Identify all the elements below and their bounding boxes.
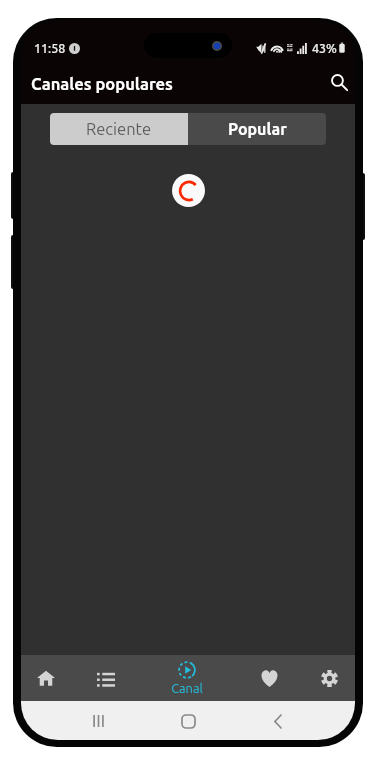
button[interactable]: Channel list xyxy=(80,655,132,701)
staticText: 43% xyxy=(312,41,337,55)
button[interactable]: Reciente xyxy=(50,113,188,145)
staticText: 11:58 xyxy=(34,41,66,55)
button[interactable]: Popular xyxy=(188,113,326,145)
staticText: Reciente xyxy=(86,120,152,138)
staticText: Canal xyxy=(171,681,203,695)
button[interactable]: Home xyxy=(21,655,72,701)
button[interactable]: Favorites xyxy=(243,655,295,701)
staticText: Canales populares xyxy=(31,75,173,93)
button[interactable]: Settings xyxy=(303,655,355,701)
button[interactable]: Canal xyxy=(161,655,213,701)
staticText: Popular xyxy=(228,120,287,138)
button[interactable]: Search xyxy=(315,64,355,104)
